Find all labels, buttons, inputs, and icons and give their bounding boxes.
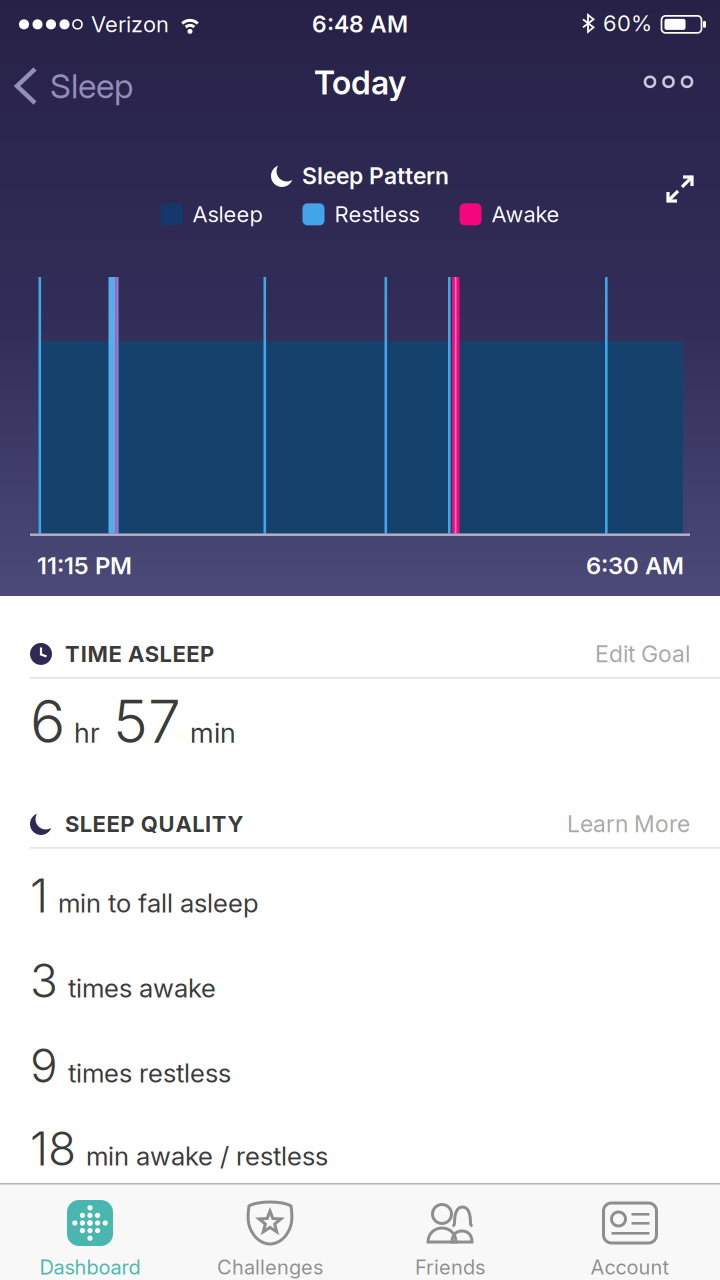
staticText: 6:30 AM — [586, 551, 684, 580]
staticText: Dashboard — [39, 1255, 140, 1279]
staticText: 11:15 PM — [37, 551, 132, 580]
button[interactable]: Expand — [652, 161, 708, 217]
button[interactable]: Learn More — [567, 810, 690, 838]
staticText: 6 — [30, 686, 65, 757]
button[interactable]: More — [645, 56, 720, 87]
staticText: Friends — [415, 1255, 485, 1279]
staticText: 60% — [603, 10, 652, 37]
staticText: 1 — [30, 868, 48, 924]
button[interactable]: Edit Goal — [595, 640, 690, 668]
staticText: Sleep — [50, 66, 133, 106]
button[interactable]: Dashboard — [0, 1200, 180, 1279]
button[interactable]: Friends — [360, 1200, 540, 1279]
staticText: times restless — [68, 1057, 231, 1089]
button[interactable]: Account — [540, 1200, 720, 1279]
staticText: 18 — [30, 1121, 76, 1177]
staticText: times awake — [68, 972, 216, 1004]
staticText: 57 — [113, 686, 181, 757]
staticText: Edit Goal — [595, 640, 690, 668]
button[interactable]: Challenges — [180, 1200, 360, 1279]
staticText: min — [190, 716, 236, 749]
staticText: TIME ASLEEP — [65, 641, 214, 667]
staticText: min awake / restless — [86, 1140, 328, 1172]
button[interactable]: Sleep — [0, 56, 133, 106]
staticText: Today — [314, 63, 406, 102]
staticText: Awake — [491, 201, 559, 228]
staticText: Account — [590, 1255, 669, 1279]
staticText: hr — [74, 716, 100, 749]
staticText: Verizon — [91, 11, 169, 38]
staticText: 6:48 AM — [312, 10, 408, 38]
staticText: 9 — [30, 1038, 58, 1094]
staticText: min to fall asleep — [58, 887, 259, 919]
staticText: SLEEP QUALITY — [65, 811, 244, 837]
staticText: Asleep — [192, 201, 262, 228]
staticText: Learn More — [567, 810, 690, 838]
staticText: Challenges — [217, 1255, 323, 1279]
staticText: 3 — [30, 953, 58, 1009]
staticText: Restless — [334, 201, 419, 228]
staticText: Sleep Pattern — [302, 162, 449, 190]
